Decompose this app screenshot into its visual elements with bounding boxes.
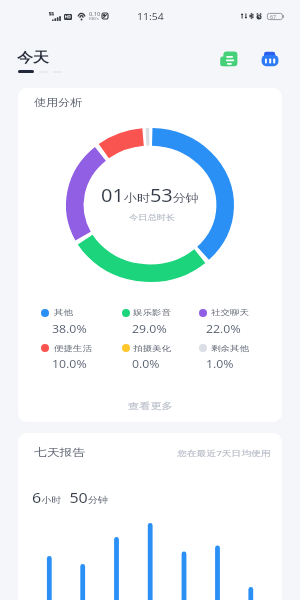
staticText: 67 [270, 13, 277, 19]
staticText: 6小时 50分钟 [32, 489, 108, 507]
staticText: 您在最近7天日均使用 [177, 448, 271, 459]
staticText: 七天报告 [34, 446, 86, 460]
staticText: 拍摄美化 [133, 344, 171, 354]
button[interactable]: Toolbox [255, 46, 283, 73]
staticText: 其他 [54, 308, 73, 318]
staticText: 11:54 [137, 10, 164, 22]
staticText: 今天 [17, 49, 49, 66]
staticText: 剩余其他 [211, 344, 249, 354]
staticText: 便捷生活 [54, 344, 92, 354]
staticText: 社交聊天 [211, 308, 249, 318]
staticText: 娱乐影音 [133, 308, 171, 318]
staticText: 38.0% [52, 321, 87, 336]
staticText: 查看更多 [128, 400, 173, 411]
staticText: 01小时53分钟 [101, 184, 199, 207]
staticText: 10.0% [52, 356, 87, 371]
staticText: 使用分析 [34, 96, 82, 109]
staticText: 0.10 [89, 11, 101, 17]
staticText: KB/s [89, 15, 99, 20]
button[interactable]: Usage reports [214, 46, 242, 73]
button[interactable]: 查看更多 [18, 390, 282, 420]
staticText: 1.0% [206, 356, 234, 371]
staticText: 22.0% [206, 321, 241, 336]
staticText: 29.0% [132, 321, 167, 336]
staticText: 0.0% [132, 356, 160, 371]
staticText: 今日总时长 [129, 212, 175, 222]
